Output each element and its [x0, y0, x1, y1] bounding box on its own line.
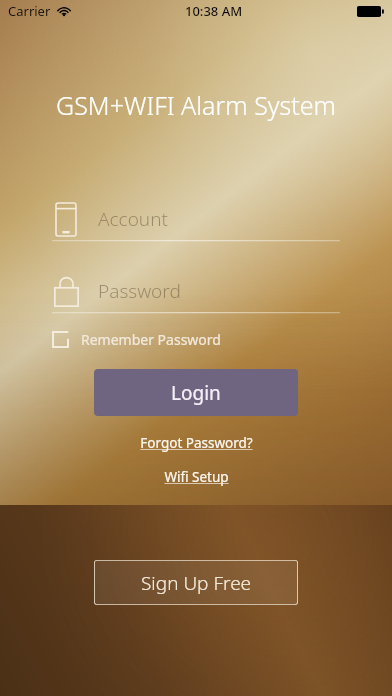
staticText: Sign Up Free: [141, 570, 252, 596]
staticText: Login: [171, 380, 221, 406]
staticText: Account: [98, 206, 168, 232]
button[interactable]: Wifi Setup: [154, 466, 239, 488]
button[interactable]: Remember Password: [48, 324, 229, 355]
staticText: Remember Password: [81, 330, 221, 349]
staticText: 10:38 AM: [185, 2, 243, 20]
staticText: GSM+WIFI Alarm System: [0, 88, 392, 122]
button[interactable]: Login: [94, 369, 298, 416]
button[interactable]: Account: [52, 198, 340, 242]
staticText: Password: [98, 278, 181, 304]
button[interactable]: Forgot Password?: [130, 432, 263, 454]
button[interactable]: Sign Up Free: [94, 560, 298, 605]
button[interactable]: Password: [52, 270, 340, 314]
staticText: Carrier: [8, 2, 51, 20]
other: Password: [54, 275, 79, 307]
other: Account: [56, 203, 76, 236]
